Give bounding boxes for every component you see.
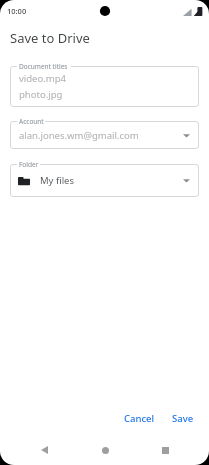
button[interactable]: Cancel [118,408,161,429]
staticText: My files [40,174,183,187]
button[interactable]: Folder [10,159,199,197]
button[interactable]: Account [10,116,199,149]
staticText: Save [172,412,194,425]
button[interactable]: Back [36,442,52,458]
button[interactable]: Home [97,442,113,458]
staticText: Account [19,117,44,126]
staticText: photo.jpg [19,88,63,101]
staticText: video.mp4 [19,72,66,85]
other: Expand [183,178,190,183]
staticText: Document titles [19,62,68,71]
other: Expand [183,133,190,138]
staticText: alan.jones.wm@gmail.com [19,129,183,142]
button[interactable]: Recent apps [157,442,173,458]
staticText: 10:00 [7,6,27,16]
staticText: Folder [19,160,39,169]
staticText: Cancel [124,412,155,425]
staticText: Save to Drive [10,29,90,47]
button[interactable]: Save [166,408,200,429]
